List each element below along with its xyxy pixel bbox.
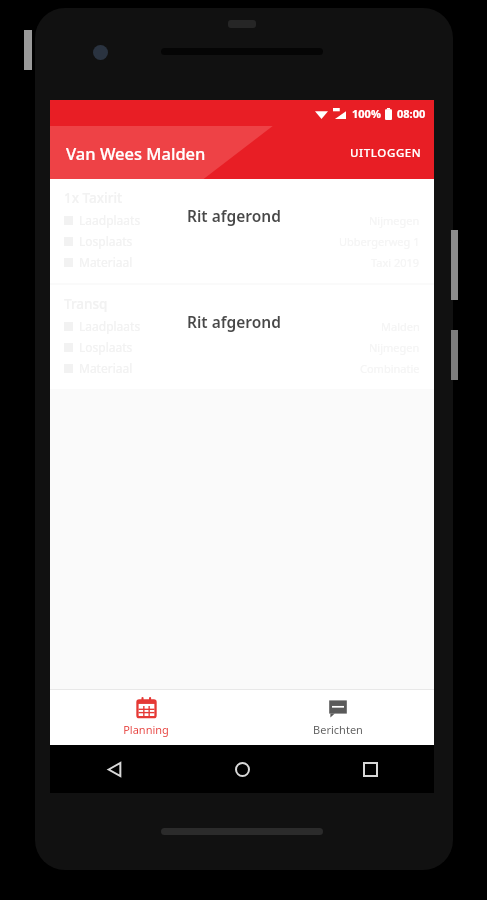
staticText: Transq [64,295,108,313]
staticText: Nijmegen [369,213,420,228]
staticText: Planning [123,722,169,737]
button[interactable]: Berichten [242,689,434,745]
button[interactable]: Back [97,752,131,786]
staticText: Laadplaats [79,212,141,228]
button[interactable]: Planning [50,689,242,745]
button[interactable]: Home [225,752,259,786]
staticText: 1x Taxirit [64,189,123,207]
staticText: Materiaal [79,360,133,376]
staticText: Rit afgerond [187,205,281,226]
staticText: Losplaats [79,233,133,249]
button[interactable]: 1x Taxirit [50,179,434,283]
button[interactable]: UITLOGGEN [338,137,434,169]
staticText: Van Wees Malden [66,142,206,164]
staticText: Laadplaats [79,318,141,334]
staticText: Losplaats [79,339,133,355]
staticText: 08:00 [397,106,426,121]
staticText: 100% [352,106,381,121]
button[interactable]: Recents [353,752,387,786]
staticText: Ubbergerweg 1 [339,234,420,249]
staticText: Rit afgerond [187,311,281,332]
button[interactable]: Transq [50,285,434,389]
staticText: Materiaal [79,254,133,270]
staticText: Malden [381,319,420,334]
staticText: Nijmegen [369,340,420,355]
staticText: Berichten [313,722,363,737]
staticText: Combinatie [360,361,420,376]
staticText: UITLOGGEN [350,145,422,161]
staticText: Taxi 2019 [371,255,420,270]
